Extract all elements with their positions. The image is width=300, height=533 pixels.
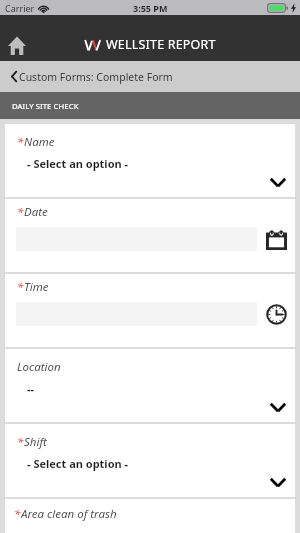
button[interactable]: Pick time [266,304,287,325]
button[interactable]: * [5,199,295,272]
staticText: * [17,434,24,450]
button[interactable]: Home [0,15,33,61]
button[interactable]: * [5,274,295,347]
button[interactable]: Custom Forms: Complete Form [0,61,300,92]
button[interactable]: Pick date [266,229,287,250]
staticText: * [14,506,21,521]
staticText: DAILY SITE CHECK [12,101,79,111]
staticText: * [17,279,24,295]
button[interactable]: Open options [265,397,291,417]
staticText: Area clean of trash [21,506,117,521]
staticText: Location [17,359,61,375]
button[interactable]: * [5,424,295,497]
staticText: Time [24,279,49,295]
staticText: * [17,134,24,150]
staticText: -- [27,381,35,396]
button[interactable]: Open options [265,472,291,492]
staticText: Custom Forms: Complete Form [19,70,173,84]
staticText: * [17,204,24,220]
staticText: Name [24,134,55,150]
staticText: 3:55 PM [133,2,168,14]
staticText: Date [24,204,48,220]
staticText: - Select an option - [27,456,129,471]
staticText: - Select an option - [27,156,129,171]
button[interactable]: * [5,124,295,197]
button[interactable]: * [5,499,295,533]
button[interactable]: Location [5,349,295,422]
staticText: Carrier [5,2,35,14]
staticText: WELLSITE REPORT [106,36,216,53]
button[interactable]: Open options [265,172,291,192]
staticText: Shift [24,434,47,450]
